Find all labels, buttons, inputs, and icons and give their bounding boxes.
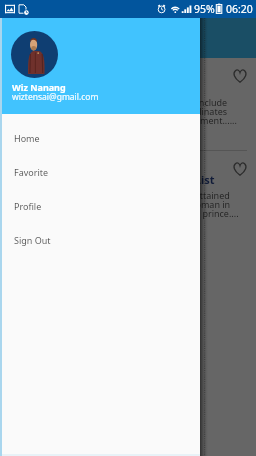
staticText: Sign Out bbox=[14, 234, 51, 246]
staticText: Article bbox=[44, 29, 87, 48]
button[interactable]: Favorite bbox=[229, 65, 251, 87]
button[interactable] bbox=[0, 0, 256, 456]
button[interactable]: Home bbox=[0, 121, 200, 155]
button[interactable]: Profile bbox=[0, 189, 200, 223]
staticText: wiztensai@gmail.com bbox=[12, 91, 99, 103]
staticText: These are some of the things that they a… bbox=[12, 96, 237, 127]
staticText: Wiz Nanang bbox=[12, 81, 66, 93]
staticText: 06:20 bbox=[226, 2, 253, 16]
staticText: Home bbox=[14, 132, 40, 144]
staticText: 95% bbox=[194, 2, 215, 16]
staticText: Sunda Empire Earth Organization bbox=[12, 79, 195, 94]
button[interactable]: Open navigation drawer bbox=[10, 26, 34, 50]
button[interactable]: Favorite bbox=[229, 158, 251, 180]
staticText: Profile bbox=[14, 200, 42, 212]
button[interactable]: Sign Out bbox=[0, 223, 200, 257]
staticText: She obtained the throne after she was fi… bbox=[12, 189, 239, 220]
button[interactable]: Agung Sejagat Kingdom Princess List bbox=[0, 151, 256, 243]
button[interactable]: Favorite bbox=[0, 155, 200, 189]
staticText: Favorite bbox=[14, 166, 49, 178]
button[interactable]: Sunda Empire Earth Organization bbox=[0, 58, 256, 150]
staticText: Agung Sejagat Kingdom Princess List bbox=[12, 172, 215, 187]
